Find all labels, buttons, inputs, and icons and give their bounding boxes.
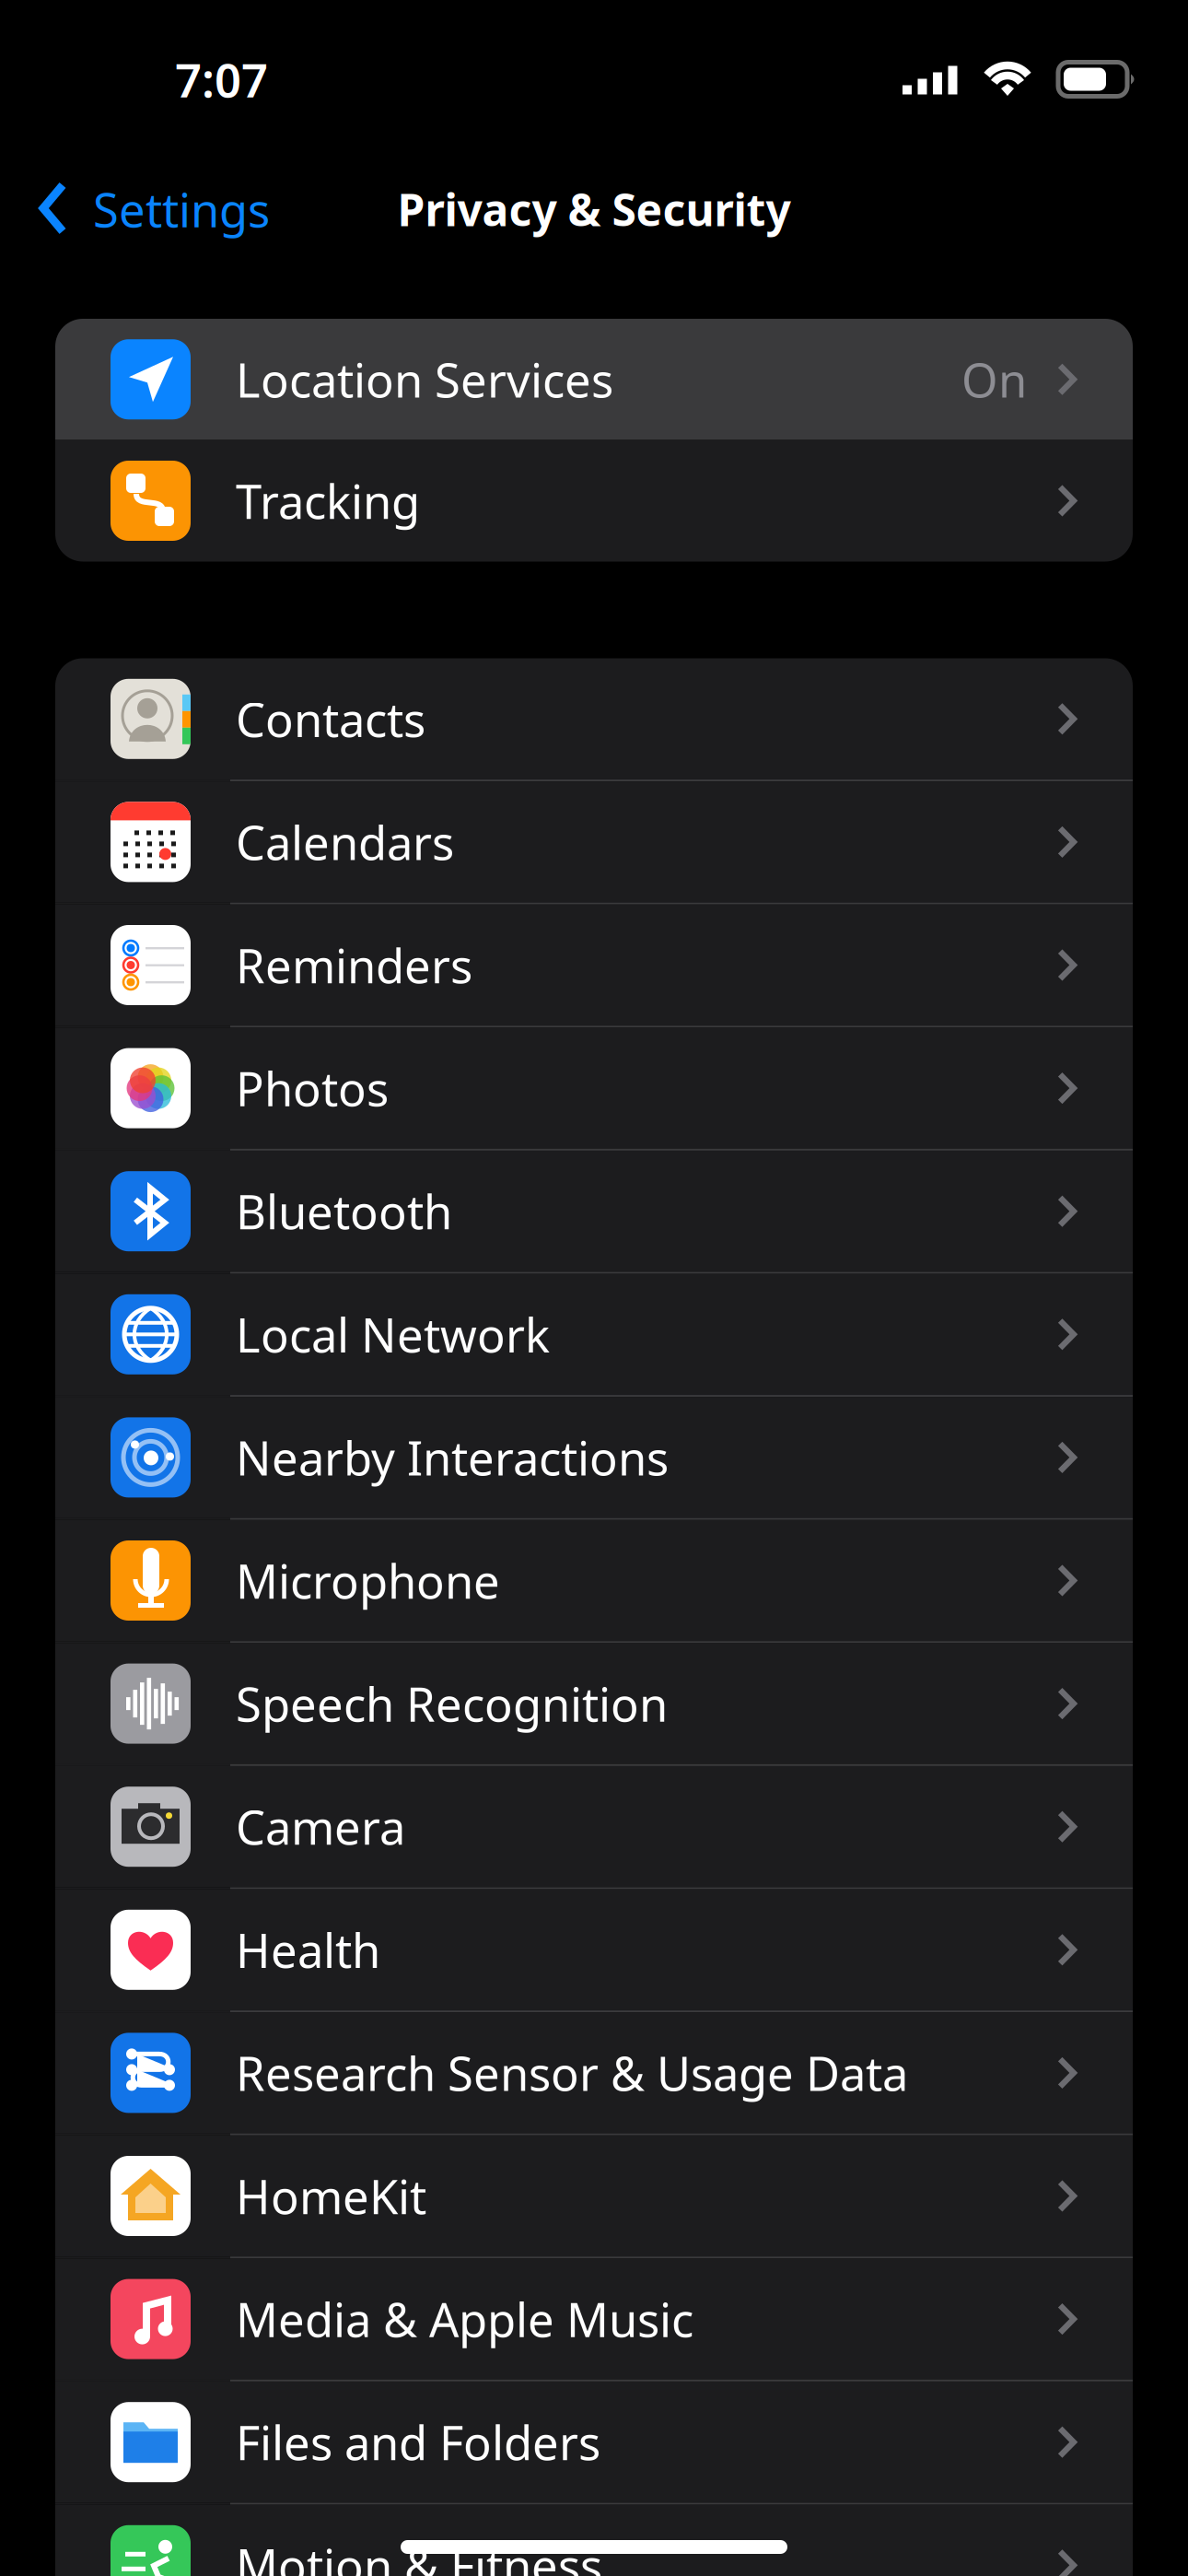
button[interactable]: Local Network [55,1274,1133,1395]
staticText: Photos [236,1057,389,1119]
button[interactable]: Nearby Interactions [55,1397,1133,1518]
staticText: Settings [93,178,270,240]
staticText: Microphone [236,1550,500,1612]
staticText: Files and Folders [236,2411,600,2473]
staticText: Contacts [236,688,425,750]
button[interactable]: Research Sensor & Usage Data [55,2012,1133,2133]
staticText: Reminders [236,934,472,996]
staticText: Motion & Fitness [236,2534,602,2576]
button[interactable]: Files and Folders [55,2382,1133,2503]
staticText: Location Services [236,348,613,410]
staticText: Bluetooth [236,1180,452,1242]
staticText: Health [236,1919,380,1981]
button[interactable]: Media & Apple Music [55,2258,1133,2380]
staticText: Privacy & Security [397,180,791,238]
staticText: Tracking [236,470,420,532]
button[interactable]: Location Services [55,319,1133,440]
button[interactable]: Photos [55,1028,1133,1149]
button[interactable]: Health [55,1889,1133,2010]
button[interactable]: Speech Recognition [55,1643,1133,1764]
button[interactable]: Settings [0,148,292,270]
staticText: HomeKit [236,2165,426,2227]
staticText: Local Network [236,1303,550,1365]
button[interactable]: Contacts [55,658,1133,780]
button[interactable]: Bluetooth [55,1151,1133,1272]
button[interactable]: Camera [55,1766,1133,1887]
button[interactable]: Microphone [55,1520,1133,1641]
button[interactable]: Calendars [55,781,1133,903]
staticText: Camera [236,1796,405,1858]
staticText: Calendars [236,811,454,873]
staticText: Speech Recognition [236,1673,668,1735]
staticText: Media & Apple Music [236,2288,693,2350]
button[interactable]: Motion & Fitness [55,2505,1133,2576]
button[interactable]: HomeKit [55,2135,1133,2257]
button[interactable]: Reminders [55,904,1133,1026]
button[interactable]: Tracking [55,440,1133,562]
staticText: Research Sensor & Usage Data [236,2042,908,2104]
staticText: On [961,348,1027,410]
staticText: Nearby Interactions [236,1426,669,1488]
staticText: 7:07 [175,48,268,110]
